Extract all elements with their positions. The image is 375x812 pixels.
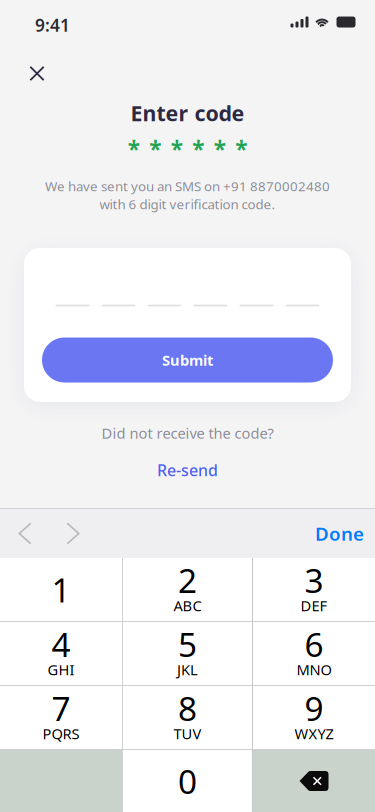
button[interactable]: 9 xyxy=(253,686,375,749)
button[interactable]: 2 xyxy=(123,558,252,621)
button[interactable]: 5 xyxy=(123,622,252,685)
button[interactable]: 7 xyxy=(0,686,122,749)
staticText: MNO xyxy=(296,660,331,679)
staticText: 1 xyxy=(51,567,70,612)
staticText: WXYZ xyxy=(294,724,333,743)
staticText: 2 xyxy=(178,558,197,602)
staticText: * xyxy=(235,134,247,164)
button[interactable]: 4 xyxy=(0,622,122,685)
button[interactable]: Done xyxy=(315,509,364,558)
button[interactable]: 0 xyxy=(123,750,252,812)
button[interactable]: 3 xyxy=(253,558,375,621)
staticText: ABC xyxy=(173,596,201,615)
button[interactable]: 1 xyxy=(0,558,122,621)
staticText: 0 xyxy=(178,759,197,803)
staticText: 6 xyxy=(304,622,323,666)
button[interactable]: Submit xyxy=(42,337,333,382)
staticText: 4 xyxy=(51,622,70,666)
staticText: 9 xyxy=(304,686,323,730)
staticText: * xyxy=(149,134,161,164)
button[interactable]: Next field xyxy=(49,509,97,558)
staticText: TUV xyxy=(173,724,201,743)
staticText: Done xyxy=(315,521,364,546)
button[interactable]: Previous field xyxy=(1,509,49,558)
staticText: GHI xyxy=(47,660,74,679)
staticText: DEF xyxy=(300,596,327,615)
staticText: We have sent you an SMS on +91 887000248… xyxy=(45,177,330,195)
staticText: * xyxy=(128,134,140,164)
staticText: 5 xyxy=(178,622,197,666)
button[interactable]: Close xyxy=(15,51,59,95)
staticText: 9:41 xyxy=(35,13,70,36)
staticText: * xyxy=(214,134,226,164)
staticText: with 6 digit verification code. xyxy=(99,195,275,213)
staticText: * xyxy=(171,134,183,164)
staticText: * xyxy=(192,134,204,164)
staticText: PQRS xyxy=(42,724,79,743)
button[interactable]: Re-send xyxy=(132,461,242,479)
staticText: Submit xyxy=(162,350,213,370)
staticText: JKL xyxy=(177,660,198,679)
staticText: 8 xyxy=(178,686,197,730)
button[interactable]: 8 xyxy=(123,686,252,749)
staticText: 3 xyxy=(304,558,323,602)
staticText: 7 xyxy=(51,686,70,730)
staticText: Enter code xyxy=(130,99,244,127)
button[interactable]: 6 xyxy=(253,622,375,685)
button[interactable]: Delete xyxy=(253,750,375,812)
staticText: Re-send xyxy=(157,459,218,481)
staticText: Did not receive the code? xyxy=(101,423,273,443)
